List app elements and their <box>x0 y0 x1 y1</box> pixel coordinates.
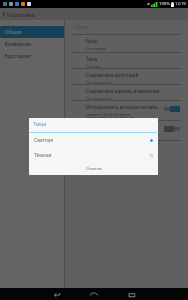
staticText: Сохраняет до 20 последних использованных… <box>86 112 135 120</box>
staticText: Отмена <box>86 166 102 172</box>
button[interactable]: Back <box>41 288 71 300</box>
staticText: Системный <box>86 46 106 51</box>
staticText: Язык <box>86 38 98 45</box>
staticText: Тема <box>86 56 98 63</box>
staticText: Светлая <box>34 137 54 144</box>
button[interactable]: Отмена <box>29 163 158 175</box>
staticText: По умолчанию <box>86 96 112 100</box>
staticText: 12:19 <box>175 1 186 7</box>
staticText: Общие <box>74 24 90 30</box>
staticText: Общие <box>5 29 22 36</box>
staticText: Сортировка категорий <box>86 72 139 79</box>
button[interactable]: Toggle <box>164 106 180 112</box>
button[interactable]: Back <box>0 8 7 20</box>
staticText: Сортировка единиц измерения <box>86 88 160 95</box>
button[interactable]: Показывать подсказки <box>66 121 188 140</box>
staticText: Светлая <box>86 64 100 68</box>
staticText: 100% <box>159 1 170 7</box>
staticText: Тёмная <box>34 152 52 159</box>
button[interactable]: Toggle <box>164 126 180 132</box>
button[interactable]: Recents <box>117 288 147 300</box>
button[interactable]: Использовать историю конвертаций <box>66 101 188 120</box>
staticText: Конверсии <box>5 41 31 48</box>
staticText: Курс валют <box>5 53 32 60</box>
button[interactable]: Язык <box>66 35 188 52</box>
button[interactable]: Конверсии <box>0 38 64 50</box>
button[interactable]: Home <box>79 288 109 300</box>
button[interactable]: Сортировка единиц измерения <box>66 85 188 100</box>
staticText: Краткие описания функций в интерфейсе пр… <box>86 132 131 140</box>
button[interactable]: Тёмная <box>29 148 158 163</box>
button[interactable]: Тема <box>66 53 188 68</box>
staticText: Настройки <box>7 11 35 18</box>
button[interactable]: Курс валют <box>0 50 64 62</box>
button[interactable]: Общие <box>0 26 64 38</box>
button[interactable]: Сортировка категорий <box>66 69 188 84</box>
button[interactable]: Светлая <box>29 133 158 148</box>
staticText: По умолчанию <box>86 80 112 84</box>
staticText: Тема <box>33 120 47 128</box>
staticText: Использовать историю конвертаций <box>86 104 162 111</box>
